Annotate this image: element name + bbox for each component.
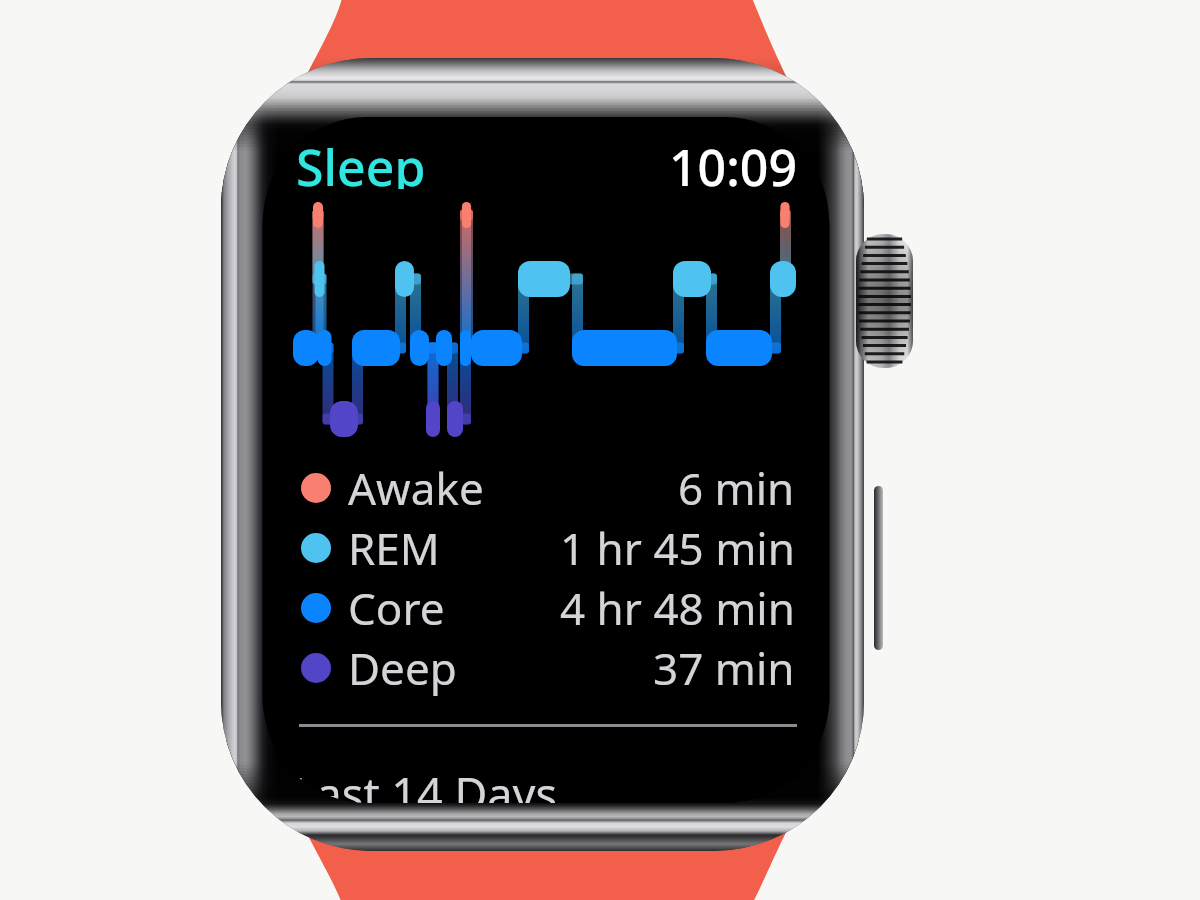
button[interactable]: Deep [301, 638, 795, 698]
staticText: Awake [348, 458, 484, 518]
staticText: REM [348, 518, 440, 578]
staticText: Core [348, 578, 445, 638]
staticText: 37 min [653, 638, 795, 698]
staticText: 6 min [678, 458, 795, 518]
button[interactable]: REM [301, 518, 795, 578]
staticText: 4 hr 48 min [560, 578, 795, 638]
button[interactable]: Last 14 Days [293, 763, 558, 803]
button[interactable]: Awake [301, 458, 795, 518]
staticText: Deep [348, 638, 457, 698]
button[interactable]: Sleep [296, 133, 426, 189]
button[interactable]: Core [301, 578, 795, 638]
staticText: 10:09 [669, 133, 797, 189]
staticText: 1 hr 45 min [560, 518, 795, 578]
